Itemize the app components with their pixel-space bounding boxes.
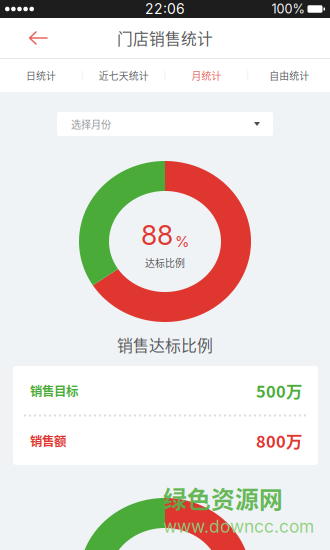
staticText: www.downcc.com [163,516,314,537]
staticText: 800万 [256,429,302,452]
staticText: 22:06 [145,0,185,17]
button[interactable]: 销售目标 [13,366,318,415]
staticText: % [175,233,189,250]
staticText: 销售达标比例 [117,333,213,356]
staticText: 月统计 [191,68,221,83]
staticText: 日统计 [26,68,56,83]
staticText: 达标比例 [145,255,185,270]
staticText: 自由统计 [269,68,309,83]
staticText: 近七天统计 [99,68,149,83]
button[interactable]: 近七天统计 [83,59,165,92]
staticText: 门店销售统计 [117,27,213,49]
button[interactable]: 日统计 [0,59,82,92]
button[interactable]: 自由统计 [248,59,330,92]
staticText: 销售目标 [30,381,78,399]
staticText: 选择月份 [71,117,111,131]
staticText: 绿色资源网 [163,481,283,515]
staticText: 销售额 [30,431,66,449]
button[interactable]: 返回 [0,18,61,58]
button[interactable]: 销售额 [13,416,318,465]
staticText: 100% [271,1,304,17]
button[interactable]: 选择月份 [57,112,273,136]
button[interactable]: 月统计 [165,59,247,92]
staticText: 500万 [256,379,302,402]
staticText: 88 [141,219,173,251]
